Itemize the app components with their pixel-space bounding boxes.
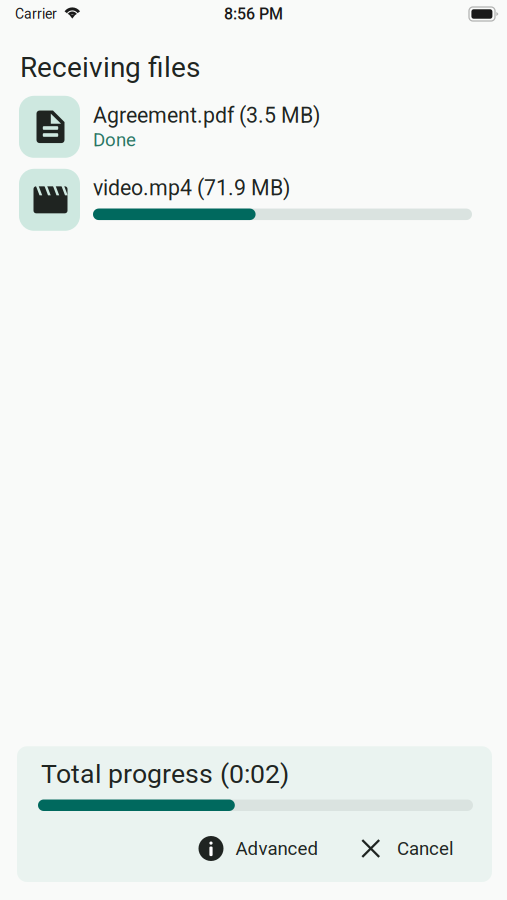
staticText: Total progress (0:02) <box>41 758 289 789</box>
staticText: Agreement.pdf (3.5 MB) <box>93 103 320 128</box>
staticText: Advanced <box>235 838 318 859</box>
button[interactable]: Cancel <box>361 838 454 859</box>
staticText: 8:56 PM <box>224 5 283 23</box>
staticText: video.mp4 (71.9 MB) <box>93 176 290 201</box>
button[interactable]: Advanced <box>198 836 318 861</box>
staticText: Cancel <box>397 838 454 859</box>
staticText: Carrier <box>15 6 57 22</box>
button[interactable]: video.mp4 (71.9 MB) <box>0 167 507 229</box>
button[interactable]: Agreement.pdf (3.5 MB) <box>0 96 507 158</box>
staticText: Receiving files <box>20 51 200 84</box>
staticText: Done <box>93 129 136 151</box>
